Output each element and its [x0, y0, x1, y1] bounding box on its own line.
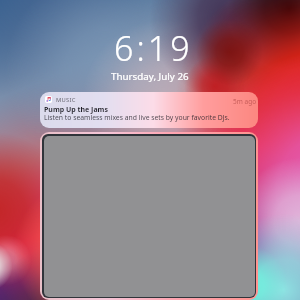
- staticText: Thursday, July 26: [111, 70, 189, 83]
- other: Music app icon: [45, 96, 52, 103]
- button[interactable]: [40, 132, 258, 300]
- staticText: Pump Up the Jams: [44, 105, 108, 115]
- staticText: 6:19: [114, 25, 193, 71]
- button[interactable]: Music app icon: [40, 92, 258, 128]
- staticText: Listen to seamless mixes and live sets b…: [44, 113, 230, 122]
- staticText: MUSIC: [56, 96, 76, 104]
- staticText: 5m ago: [233, 97, 257, 106]
